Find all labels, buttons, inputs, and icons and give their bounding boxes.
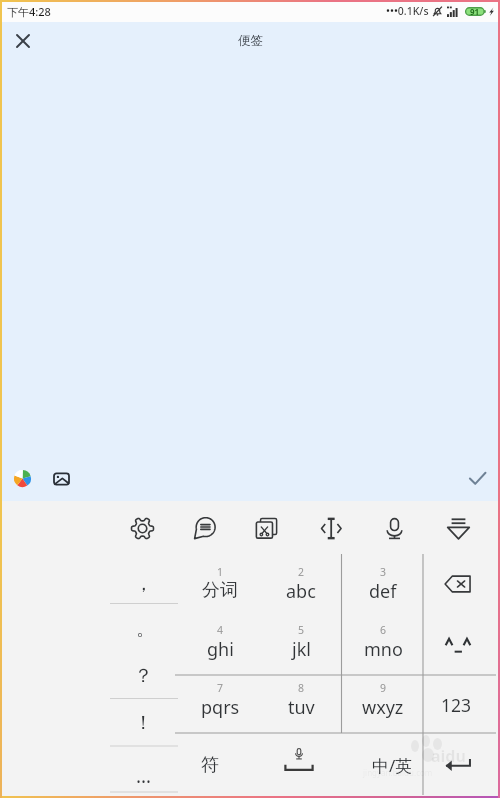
button[interactable]: 3 — [342, 557, 424, 615]
button[interactable]: Close — [9, 27, 37, 55]
button[interactable]: 1 — [179, 557, 261, 615]
staticText: ， — [134, 572, 153, 596]
button[interactable]: Clipboard — [247, 509, 285, 547]
staticText: aidu — [431, 745, 466, 767]
staticText: ghi — [207, 637, 234, 662]
staticText: ？ — [134, 664, 153, 688]
staticText: def — [369, 579, 397, 604]
staticText: 便签 — [238, 33, 263, 49]
button[interactable]: 5 — [260, 615, 342, 673]
button[interactable]: Emoticon — [421, 617, 494, 675]
button[interactable]: Backspace — [421, 555, 494, 613]
staticText: jingyan.baidu.com — [363, 767, 433, 778]
staticText: 。 — [136, 617, 155, 641]
staticText: 4 — [217, 623, 224, 637]
staticText: mno — [364, 637, 403, 662]
staticText: 6 — [380, 623, 387, 637]
button[interactable]: Hide keyboard — [439, 509, 477, 547]
button[interactable]: Insert image — [48, 465, 75, 492]
staticText: 符 — [201, 754, 219, 777]
staticText: 91 — [470, 6, 480, 17]
staticText: abc — [286, 579, 316, 604]
staticText: 123 — [441, 693, 472, 717]
staticText: 7 — [217, 681, 224, 695]
staticText: 8 — [298, 681, 305, 695]
staticText: … — [136, 763, 152, 789]
button[interactable]: Keyboard settings — [123, 509, 161, 547]
button[interactable]: 9 — [342, 673, 424, 731]
button[interactable]: 符 — [175, 734, 245, 796]
button[interactable]: Enter — [421, 734, 494, 796]
button[interactable]: 6 — [342, 615, 424, 673]
staticText: 5 — [298, 623, 305, 637]
button[interactable]: 7 — [179, 673, 261, 731]
button[interactable]: 123 — [420, 676, 493, 734]
button[interactable]: Suggestions — [185, 509, 223, 547]
button[interactable]: Text colour — [9, 465, 36, 492]
button[interactable]: Done — [462, 463, 492, 493]
button[interactable]: ！ — [108, 699, 179, 747]
button[interactable]: 8 — [260, 673, 342, 731]
button[interactable]: Space — [254, 731, 344, 793]
staticText: tuv — [288, 695, 315, 720]
staticText: •••0.1K/s — [386, 4, 429, 18]
button[interactable]: Voice input — [375, 509, 413, 547]
button[interactable]: … — [108, 752, 179, 798]
staticText: jkl — [292, 637, 311, 662]
button[interactable]: 4 — [179, 615, 261, 673]
button[interactable]: 。 — [108, 611, 179, 659]
staticText: 分词 — [202, 579, 238, 602]
staticText: 9 — [380, 681, 387, 695]
button[interactable]: 2 — [260, 557, 342, 615]
staticText: 1 — [217, 565, 224, 579]
button[interactable]: Move cursor — [311, 509, 349, 547]
staticText: ！ — [134, 711, 153, 735]
button[interactable]: ？ — [108, 652, 179, 700]
staticText: wxyz — [362, 695, 404, 720]
staticText: 3 — [380, 565, 387, 579]
button[interactable]: 中/英 — [362, 734, 422, 796]
staticText: 下午4:28 — [7, 4, 51, 19]
staticText: 中/英 — [372, 754, 413, 777]
staticText: pqrs — [201, 695, 240, 720]
button[interactable]: ， — [108, 565, 179, 613]
staticText: 2 — [298, 565, 305, 579]
